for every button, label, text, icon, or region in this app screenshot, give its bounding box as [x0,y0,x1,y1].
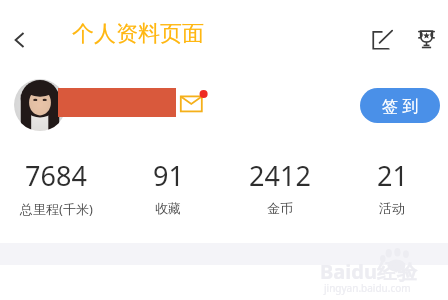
button[interactable]: Profile photo [14,79,66,131]
staticText: 91 [153,157,184,194]
button[interactable]: Messages [179,88,209,118]
staticText: 收藏 [155,200,181,216]
button[interactable]: Achievements [409,22,443,56]
button[interactable]: 7684 [0,155,112,220]
button[interactable]: 2412 [224,155,336,218]
staticText: 个人资料页面 [72,20,204,48]
staticText: 活动 [379,200,405,216]
staticText: 金币 [267,200,293,216]
staticText: 总里程(千米) [20,200,93,218]
button[interactable]: 91 [112,155,224,218]
button[interactable]: Back [2,22,38,58]
button[interactable]: 签 到 [360,88,440,123]
staticText: jingyan.baidu.com [324,281,411,295]
staticText: 2412 [249,157,311,194]
staticText: 21 [377,157,408,194]
staticText: Baidu经验 [320,258,417,285]
button[interactable]: Edit profile [365,22,399,56]
staticText: 签 到 [382,95,419,117]
button[interactable]: 21 [336,155,448,218]
staticText: 7684 [25,157,87,194]
